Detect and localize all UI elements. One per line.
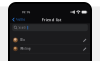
button[interactable]: Profile	[10, 16, 25, 23]
staticText: Search	[18, 26, 26, 29]
button[interactable]: Whitney	[10, 45, 90, 53]
staticText: Friend list	[42, 17, 62, 22]
button[interactable]: Ella	[10, 36, 90, 44]
staticText: Ella	[20, 38, 24, 42]
staticText: 10:16	[21, 10, 30, 14]
staticText: Profile	[15, 18, 25, 21]
staticText: Whitney	[20, 47, 30, 50]
